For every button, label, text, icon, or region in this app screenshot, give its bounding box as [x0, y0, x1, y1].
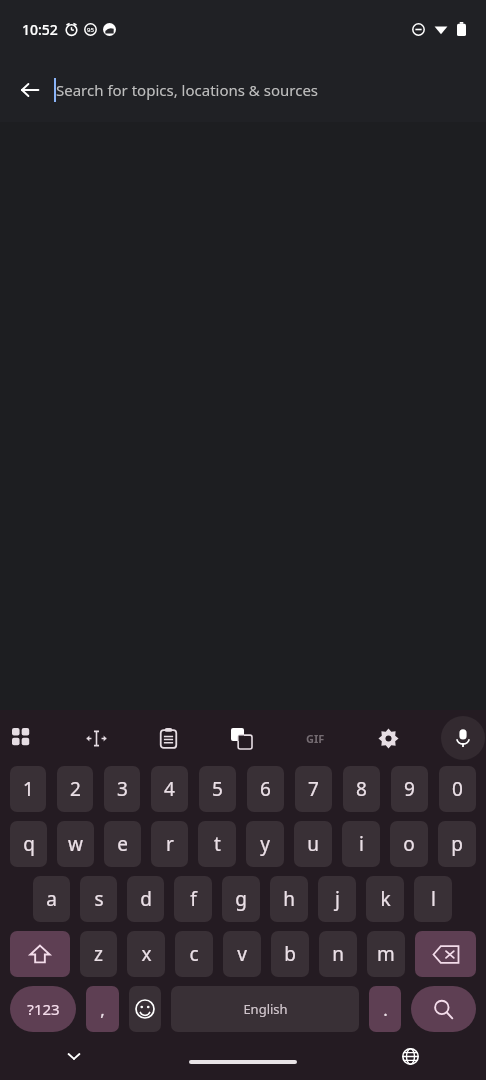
- staticText: t: [214, 831, 221, 857]
- button[interactable]: Emoji: [129, 986, 161, 1032]
- button[interactable]: 0: [439, 766, 476, 812]
- button[interactable]: GIF: [297, 728, 333, 748]
- button[interactable]: Keyboard layouts: [2, 718, 42, 758]
- staticText: ?123: [27, 999, 60, 1019]
- staticText: y: [260, 831, 270, 857]
- staticText: h: [283, 886, 295, 912]
- staticText: c: [189, 941, 199, 967]
- staticText: p: [451, 831, 463, 857]
- button[interactable]: j: [318, 876, 356, 922]
- button[interactable]: o: [390, 821, 428, 867]
- button[interactable]: k: [366, 876, 404, 922]
- staticText: English: [243, 1000, 288, 1018]
- staticText: v: [237, 941, 247, 967]
- staticText: e: [117, 831, 128, 857]
- button[interactable]: n: [319, 931, 357, 977]
- button[interactable]: 5: [199, 766, 236, 812]
- button[interactable]: i: [342, 821, 380, 867]
- staticText: m: [377, 941, 395, 967]
- button[interactable]: t: [198, 821, 236, 867]
- staticText: 9: [404, 776, 415, 802]
- staticText: u: [307, 831, 319, 857]
- button[interactable]: x: [127, 931, 165, 977]
- button[interactable]: b: [271, 931, 309, 977]
- staticText: l: [431, 886, 436, 912]
- staticText: 0: [452, 776, 463, 802]
- staticText: .: [383, 998, 388, 1021]
- button[interactable]: e: [104, 821, 141, 867]
- button[interactable]: p: [438, 821, 476, 867]
- button[interactable]: c: [175, 931, 213, 977]
- staticText: j: [335, 886, 340, 912]
- button[interactable]: w: [57, 821, 94, 867]
- button[interactable]: Back: [10, 70, 50, 110]
- button[interactable]: s: [80, 876, 117, 922]
- staticText: b: [284, 941, 296, 967]
- button[interactable]: 6: [247, 766, 284, 812]
- staticText: 3: [117, 776, 128, 802]
- button[interactable]: Change language: [392, 1038, 428, 1074]
- button[interactable]: 9: [391, 766, 428, 812]
- staticText: s: [94, 886, 104, 912]
- button[interactable]: 7: [295, 766, 332, 812]
- staticText: GIF: [306, 731, 325, 746]
- button[interactable]: Search: [411, 986, 476, 1032]
- button[interactable]: g: [222, 876, 260, 922]
- staticText: 95: [87, 26, 94, 34]
- staticText: k: [380, 886, 391, 912]
- button[interactable]: ,: [86, 986, 119, 1032]
- staticText: f: [190, 886, 197, 912]
- staticText: 10:52: [22, 20, 58, 39]
- button[interactable]: Translate: [221, 718, 261, 758]
- button[interactable]: l: [414, 876, 452, 922]
- button[interactable]: 8: [343, 766, 380, 812]
- staticText: Search for topics, locations & sources: [56, 80, 319, 100]
- staticText: g: [235, 886, 247, 912]
- button[interactable]: 4: [151, 766, 188, 812]
- staticText: ,: [100, 998, 105, 1021]
- staticText: d: [140, 886, 152, 912]
- button[interactable]: h: [270, 876, 308, 922]
- staticText: 4: [164, 776, 175, 802]
- staticText: i: [359, 831, 364, 857]
- button[interactable]: 3: [104, 766, 140, 812]
- button[interactable]: m: [367, 931, 405, 977]
- staticText: 6: [260, 776, 271, 802]
- button[interactable]: Settings: [368, 718, 408, 758]
- staticText: z: [94, 941, 103, 967]
- button[interactable]: Text editing: [76, 718, 116, 758]
- button[interactable]: d: [127, 876, 164, 922]
- button[interactable]: ?123: [10, 986, 76, 1032]
- staticText: q: [23, 831, 35, 857]
- staticText: o: [403, 831, 415, 857]
- button[interactable]: y: [246, 821, 284, 867]
- button[interactable]: a: [33, 876, 70, 922]
- staticText: x: [141, 941, 152, 967]
- button[interactable]: r: [151, 821, 188, 867]
- staticText: w: [68, 831, 83, 857]
- button[interactable]: .: [369, 986, 401, 1032]
- button[interactable]: Shift: [10, 931, 70, 977]
- staticText: r: [166, 831, 174, 857]
- staticText: n: [332, 941, 344, 967]
- button[interactable]: English: [171, 986, 359, 1032]
- staticText: a: [46, 886, 57, 912]
- button[interactable]: q: [10, 821, 47, 867]
- button[interactable]: v: [223, 931, 261, 977]
- staticText: 2: [70, 776, 81, 802]
- button[interactable]: Voice input: [441, 716, 485, 760]
- staticText: 5: [212, 776, 223, 802]
- staticText: 7: [308, 776, 319, 802]
- button[interactable]: f: [174, 876, 212, 922]
- button[interactable]: Backspace: [415, 931, 476, 977]
- button[interactable]: u: [294, 821, 332, 867]
- button[interactable]: 1: [10, 766, 46, 812]
- button[interactable]: 2: [57, 766, 93, 812]
- staticText: 1: [23, 776, 34, 802]
- button[interactable]: Hide keyboard: [56, 1038, 92, 1074]
- button[interactable]: Clipboard: [148, 718, 188, 758]
- button[interactable]: z: [80, 931, 117, 977]
- staticText: 8: [356, 776, 367, 802]
